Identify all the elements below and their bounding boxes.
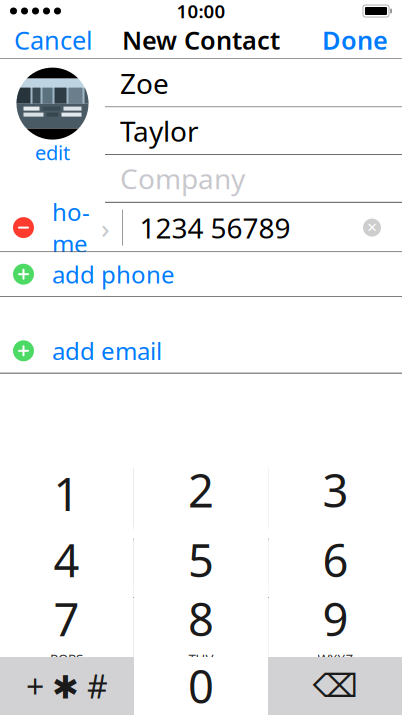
button[interactable]: edit (35, 140, 70, 162)
staticText: + ✱ # (26, 665, 108, 707)
staticText: 1234 56789 (140, 209, 291, 246)
staticText: 9 (323, 588, 349, 649)
button[interactable]: add phone (0, 252, 402, 296)
button[interactable]: 1234 56789 (123, 204, 402, 252)
staticText: TUV (188, 650, 213, 667)
staticText: Zoe (120, 65, 169, 102)
button[interactable]: home (0, 204, 122, 252)
button[interactable]: 9 (269, 584, 402, 670)
staticText: 2 (188, 460, 214, 520)
staticText: ⌫ (312, 668, 357, 704)
button[interactable]: Plus, star, pound (0, 657, 134, 715)
staticText: add phone (52, 258, 175, 290)
button[interactable]: 4 (0, 525, 133, 611)
staticText: WXYZ (318, 650, 354, 667)
button[interactable]: Cancel (4, 22, 103, 58)
button[interactable]: Taylor (105, 107, 402, 154)
button[interactable]: 0 (134, 657, 268, 715)
staticText: 0 (188, 656, 214, 715)
staticText: ✕ (366, 220, 377, 235)
staticText: 3 (323, 460, 349, 520)
button[interactable]: Done (312, 22, 398, 58)
staticText: New Contact (122, 23, 280, 57)
staticText: home (52, 196, 90, 259)
staticText: JKL (191, 591, 210, 608)
button[interactable]: Zoe (105, 60, 402, 107)
staticText: 6 (323, 529, 349, 590)
button[interactable]: Clear text (355, 211, 389, 245)
staticText: Done (322, 23, 388, 57)
staticText: Cancel (14, 23, 93, 57)
staticText: Company (120, 160, 245, 197)
staticText: GHI (54, 591, 79, 608)
staticText: edit (35, 139, 70, 166)
button[interactable]: 5 (134, 525, 268, 611)
button[interactable]: 6 (269, 525, 402, 611)
staticText: 1 (53, 463, 79, 523)
staticText: 5 (188, 529, 214, 590)
button[interactable]: 3 (269, 456, 402, 542)
staticText: 7 (53, 588, 79, 649)
staticText: › (101, 209, 110, 246)
button[interactable]: 7 (0, 584, 133, 670)
staticText: add email (52, 335, 162, 367)
button[interactable]: Company (105, 155, 402, 202)
staticText: 8 (188, 588, 214, 649)
button[interactable]: Delete (268, 657, 402, 715)
staticText: 4 (53, 529, 79, 590)
staticText: PQRS (50, 650, 83, 667)
staticText: MNO (320, 591, 352, 608)
button[interactable]: add email (0, 329, 402, 373)
button[interactable]: 1 (0, 459, 133, 539)
staticText: 10:00 (176, 0, 225, 23)
button[interactable]: 8 (134, 584, 268, 670)
button[interactable]: 2 (134, 456, 268, 542)
staticText: Taylor (120, 112, 199, 149)
